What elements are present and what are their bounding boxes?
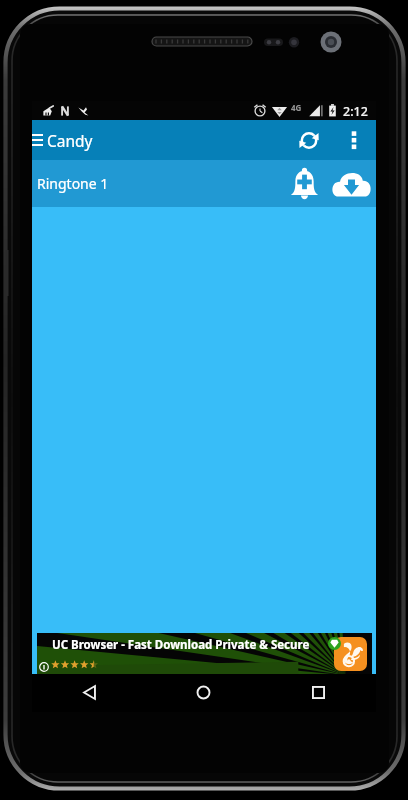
staticText: 2:12 [343, 103, 368, 120]
staticText: Candy [47, 130, 93, 151]
button[interactable]: Refresh [287, 120, 331, 160]
button[interactable]: Open navigation drawer [32, 120, 99, 160]
button[interactable]: Download [329, 160, 374, 207]
button[interactable]: Set as ringtone [284, 160, 325, 207]
button[interactable]: Recent apps [261, 674, 376, 711]
staticText: Ringtone 1 [37, 174, 109, 193]
button[interactable]: Ringtone 1 [32, 160, 376, 207]
button[interactable]: More options [331, 120, 376, 160]
button[interactable]: UC Browser - Fast Download Private & Sec… [37, 633, 372, 674]
staticText: UC Browser - Fast Download Private & Sec… [52, 637, 310, 653]
button[interactable]: Home [146, 674, 261, 711]
button[interactable]: Back [32, 674, 146, 711]
staticText: 4G [291, 102, 302, 113]
